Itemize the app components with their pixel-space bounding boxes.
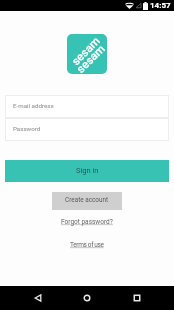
button[interactable]: Password <box>5 118 169 141</box>
button[interactable]: Recent apps <box>125 286 149 310</box>
button[interactable]: Back <box>26 286 50 310</box>
button[interactable]: Create account <box>52 192 122 210</box>
staticText: 14:57 <box>150 1 171 10</box>
staticText: E-mail address <box>13 102 54 109</box>
staticText: sesam <box>74 41 107 74</box>
staticText: Forgot password? <box>61 218 113 226</box>
staticText: Create account <box>65 196 109 204</box>
staticText: Password <box>13 125 41 132</box>
staticText: sesam <box>69 34 102 67</box>
staticText: Terms of use <box>70 241 104 249</box>
staticText: Sign in <box>76 166 99 175</box>
button[interactable]: E-mail address <box>5 95 169 118</box>
button[interactable]: Forgot password? <box>59 216 115 228</box>
button[interactable]: Home <box>75 286 99 310</box>
button[interactable]: Sign in <box>5 160 169 182</box>
button[interactable]: Terms of use <box>68 239 106 251</box>
